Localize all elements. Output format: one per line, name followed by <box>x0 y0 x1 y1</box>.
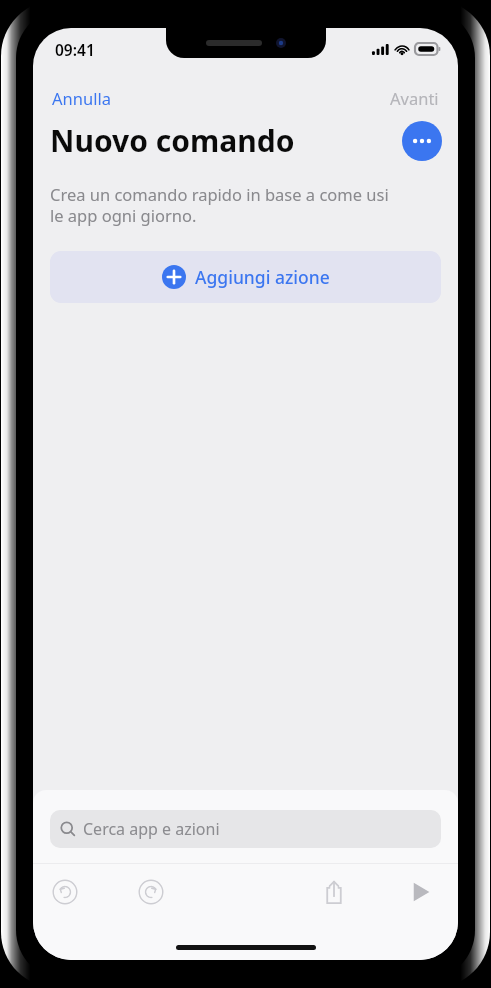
button[interactable]: Aggiungi azione <box>50 251 441 303</box>
button[interactable]: Share <box>310 868 358 916</box>
staticText: Aggiungi azione <box>195 265 330 289</box>
button[interactable]: Altre opzioni <box>402 121 442 161</box>
staticText: Cerca app e azioni <box>83 818 220 840</box>
staticText: Avanti <box>390 87 439 109</box>
button[interactable]: Redo <box>127 868 175 916</box>
staticText: Nuovo comando <box>50 120 295 161</box>
button[interactable]: Run <box>396 868 444 916</box>
staticText: Crea un comando rapido in base a come us… <box>50 183 389 227</box>
staticText: 09:41 <box>55 39 95 60</box>
button[interactable]: Undo <box>41 868 89 916</box>
button[interactable]: Cerca app e azioni <box>50 810 441 848</box>
staticText: Annulla <box>52 87 111 109</box>
button[interactable]: Annulla <box>50 84 113 112</box>
button[interactable]: Avanti <box>388 84 441 112</box>
